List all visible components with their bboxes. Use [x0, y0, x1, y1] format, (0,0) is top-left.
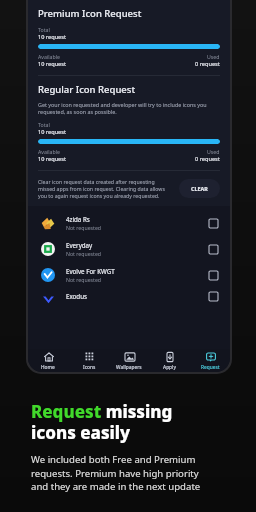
staticText: 10 request [38, 155, 66, 163]
button[interactable]: Wallpapers [109, 349, 149, 372]
button[interactable]: Request checkbox [209, 219, 218, 228]
staticText: 10 request [38, 60, 66, 68]
button[interactable]: Request checkbox [209, 245, 218, 254]
button[interactable]: 4zida Rs [28, 210, 230, 236]
staticText: Clear icon request data created after re… [38, 178, 171, 199]
staticText: Regular Icon Request [38, 83, 136, 96]
staticText: Premium Icon Request [38, 7, 142, 20]
staticText: 4zida Rs [66, 215, 90, 223]
staticText: Home [41, 364, 55, 370]
button[interactable]: Exodus [28, 288, 230, 308]
staticText: Exodus [66, 292, 209, 300]
staticText: Get your icon requested and developer wi… [38, 101, 220, 115]
staticText: 10 request [38, 128, 66, 136]
staticText: 0 request [195, 60, 220, 68]
staticText: 0 request [195, 155, 220, 163]
staticText: Apply [163, 364, 176, 370]
staticText: Not requested [66, 276, 102, 283]
button[interactable]: CLEAR [179, 179, 220, 198]
staticText: 10 request [38, 33, 66, 41]
staticText: Not requested [66, 250, 102, 257]
staticText: Evolve For KWGT [66, 267, 115, 275]
staticText: Used [207, 148, 220, 155]
staticText: Everyday [66, 241, 93, 249]
staticText: We included both Free and Premium reques… [31, 453, 201, 492]
staticText: Icons [83, 364, 96, 370]
staticText: Available [38, 148, 60, 155]
button[interactable]: Home [28, 349, 68, 372]
staticText: Request missing icons easily [31, 400, 173, 444]
staticText: Wallpapers [116, 364, 142, 370]
button[interactable]: Apply [149, 349, 189, 372]
staticText: Total [38, 121, 50, 128]
button[interactable]: Request checkbox [209, 271, 218, 280]
staticText: CLEAR [191, 185, 208, 192]
staticText: Request [201, 364, 220, 370]
staticText: Not requested [66, 224, 102, 231]
staticText: Used [207, 53, 220, 60]
button[interactable]: Icons [69, 349, 109, 372]
staticText: Total [38, 26, 50, 33]
button[interactable]: Everyday [28, 236, 230, 262]
button[interactable]: Request [190, 349, 230, 372]
button[interactable]: Evolve For KWGT [28, 262, 230, 288]
staticText: Available [38, 53, 60, 60]
